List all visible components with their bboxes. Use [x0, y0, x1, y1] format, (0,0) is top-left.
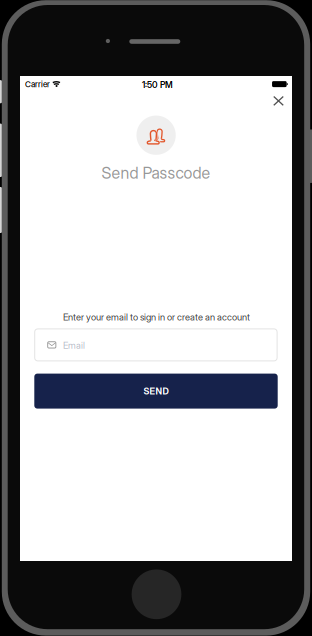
button[interactable]: SEND: [34, 374, 278, 409]
button[interactable]: Email: [34, 328, 278, 361]
staticText: Email: [63, 340, 85, 351]
staticText: Send Passcode: [101, 163, 210, 183]
staticText: Enter your email to sign in or create an…: [63, 312, 250, 323]
button[interactable]: Close: [263, 88, 293, 114]
staticText: Carrier: [25, 79, 50, 89]
staticText: SEND: [143, 386, 168, 397]
staticText: 1:50 PM: [142, 80, 173, 90]
